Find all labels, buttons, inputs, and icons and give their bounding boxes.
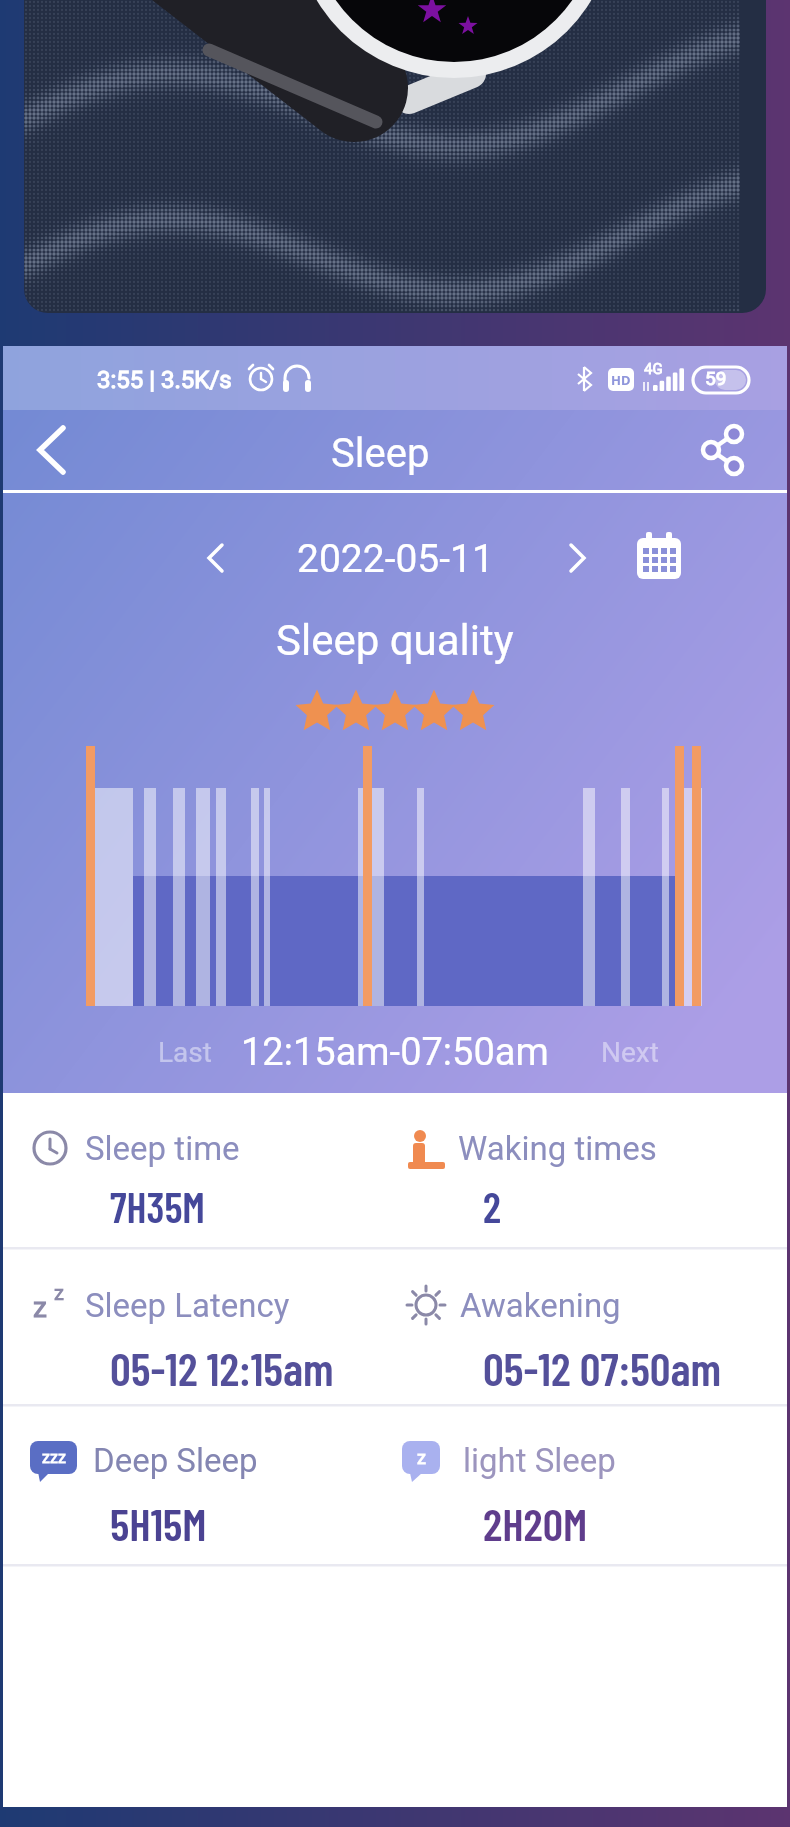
staticText: Waking times bbox=[458, 1129, 657, 1168]
staticText: 2H20M bbox=[483, 1496, 588, 1548]
staticText: Last bbox=[158, 1036, 212, 1069]
staticText: Sleep time bbox=[85, 1129, 240, 1168]
staticText: 59 bbox=[705, 367, 727, 389]
staticText: Next bbox=[601, 1036, 659, 1069]
button[interactable]: Next bbox=[598, 1030, 662, 1074]
staticText: light Sleep bbox=[463, 1441, 616, 1480]
button[interactable] bbox=[20, 418, 90, 488]
staticText: 2022-05-11 bbox=[297, 536, 494, 582]
staticText: 05-12 07:50am bbox=[483, 1340, 722, 1392]
staticText: z bbox=[33, 1291, 47, 1324]
staticText: Sleep quality bbox=[276, 616, 514, 665]
button[interactable] bbox=[185, 530, 245, 590]
button[interactable]: Last bbox=[155, 1030, 215, 1074]
button[interactable] bbox=[690, 418, 760, 488]
staticText: 7H35M bbox=[110, 1181, 205, 1231]
staticText: 5H15M bbox=[110, 1496, 207, 1548]
staticText: z bbox=[54, 1281, 64, 1304]
staticText: z bbox=[417, 1447, 426, 1468]
staticText: 05-12 12:15am bbox=[110, 1340, 334, 1392]
staticText: Deep Sleep bbox=[93, 1441, 258, 1480]
staticText: Awakening bbox=[460, 1286, 621, 1325]
staticText: HD bbox=[611, 371, 631, 389]
staticText: 2 bbox=[483, 1181, 501, 1231]
staticText: 12:15am-07:50am bbox=[241, 1030, 549, 1075]
staticText: zzz bbox=[42, 1448, 66, 1467]
staticText: 4G bbox=[644, 360, 663, 378]
staticText: Sleep Latency bbox=[85, 1286, 290, 1325]
button[interactable] bbox=[545, 530, 605, 590]
button[interactable] bbox=[630, 528, 690, 588]
staticText: Sleep bbox=[331, 430, 430, 477]
staticText: 3:55 | 3.5K/s bbox=[97, 366, 232, 394]
